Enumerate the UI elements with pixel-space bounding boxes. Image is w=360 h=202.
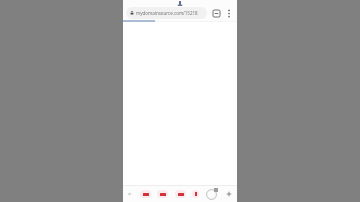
button[interactable]: Tab — [157, 190, 168, 198]
button[interactable]: Tab — [175, 190, 186, 198]
button[interactable]: Tab — [192, 190, 199, 198]
button[interactable]: Back — [126, 187, 134, 201]
button[interactable]: More options — [223, 8, 234, 19]
button[interactable]: New tab — [224, 187, 234, 201]
button[interactable]: Switch tabs — [211, 8, 222, 19]
button[interactable]: Tab count — [205, 188, 218, 201]
button[interactable]: mydomainsource.com/15218 — [126, 7, 207, 19]
staticText: mydomainsource.com/15218 — [136, 10, 198, 16]
button[interactable]: Tab — [140, 190, 151, 198]
